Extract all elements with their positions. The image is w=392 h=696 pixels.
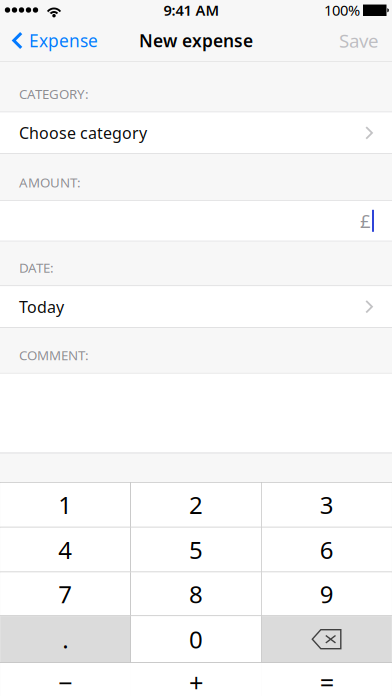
button[interactable]: − <box>0 663 130 696</box>
button[interactable]: 8 <box>131 572 261 615</box>
button[interactable]: 4 <box>0 528 130 572</box>
button[interactable]: Choose category <box>0 112 392 153</box>
button[interactable]: 3 <box>262 483 392 527</box>
staticText: − <box>58 666 72 696</box>
button[interactable]: = <box>262 663 392 696</box>
button[interactable]: + <box>131 663 261 696</box>
button[interactable]: 7 <box>0 572 130 615</box>
staticText: 0 <box>189 623 203 655</box>
button[interactable]: 0 <box>131 616 261 662</box>
button[interactable]: 1 <box>0 483 130 527</box>
staticText: New expense <box>139 29 253 52</box>
button[interactable]: Expense <box>0 20 108 61</box>
staticText: + <box>189 666 203 696</box>
staticText: Save <box>339 28 379 53</box>
staticText: 3 <box>320 489 334 521</box>
staticText: CATEGORY: <box>19 85 89 103</box>
staticText: 1 <box>58 489 72 521</box>
button[interactable]: 6 <box>262 528 392 572</box>
button[interactable]: 2 <box>131 483 261 527</box>
staticText: Today <box>19 296 64 317</box>
staticText: Expense <box>29 29 98 52</box>
staticText: 9:41 AM <box>163 0 219 20</box>
staticText: 5 <box>189 534 203 566</box>
button[interactable]: Save <box>327 20 392 61</box>
staticText: 2 <box>189 489 203 521</box>
staticText: 6 <box>320 534 334 566</box>
button[interactable]: 9 <box>262 572 392 615</box>
staticText: 8 <box>189 578 203 610</box>
staticText: 100% <box>324 0 360 20</box>
staticText: DATE: <box>19 259 54 276</box>
staticText: = <box>320 666 334 696</box>
staticText: 4 <box>58 534 72 566</box>
button[interactable]: Today <box>0 286 392 327</box>
staticText: . <box>62 623 68 655</box>
staticText: £ <box>360 208 371 233</box>
button[interactable]: . <box>0 616 130 662</box>
staticText: COMMENT: <box>19 346 89 364</box>
button[interactable]: Delete <box>262 616 392 662</box>
staticText: 9 <box>320 578 334 610</box>
staticText: AMOUNT: <box>19 173 81 191</box>
button[interactable]: 5 <box>131 528 261 572</box>
staticText: 7 <box>58 578 72 610</box>
staticText: Choose category <box>19 122 147 143</box>
